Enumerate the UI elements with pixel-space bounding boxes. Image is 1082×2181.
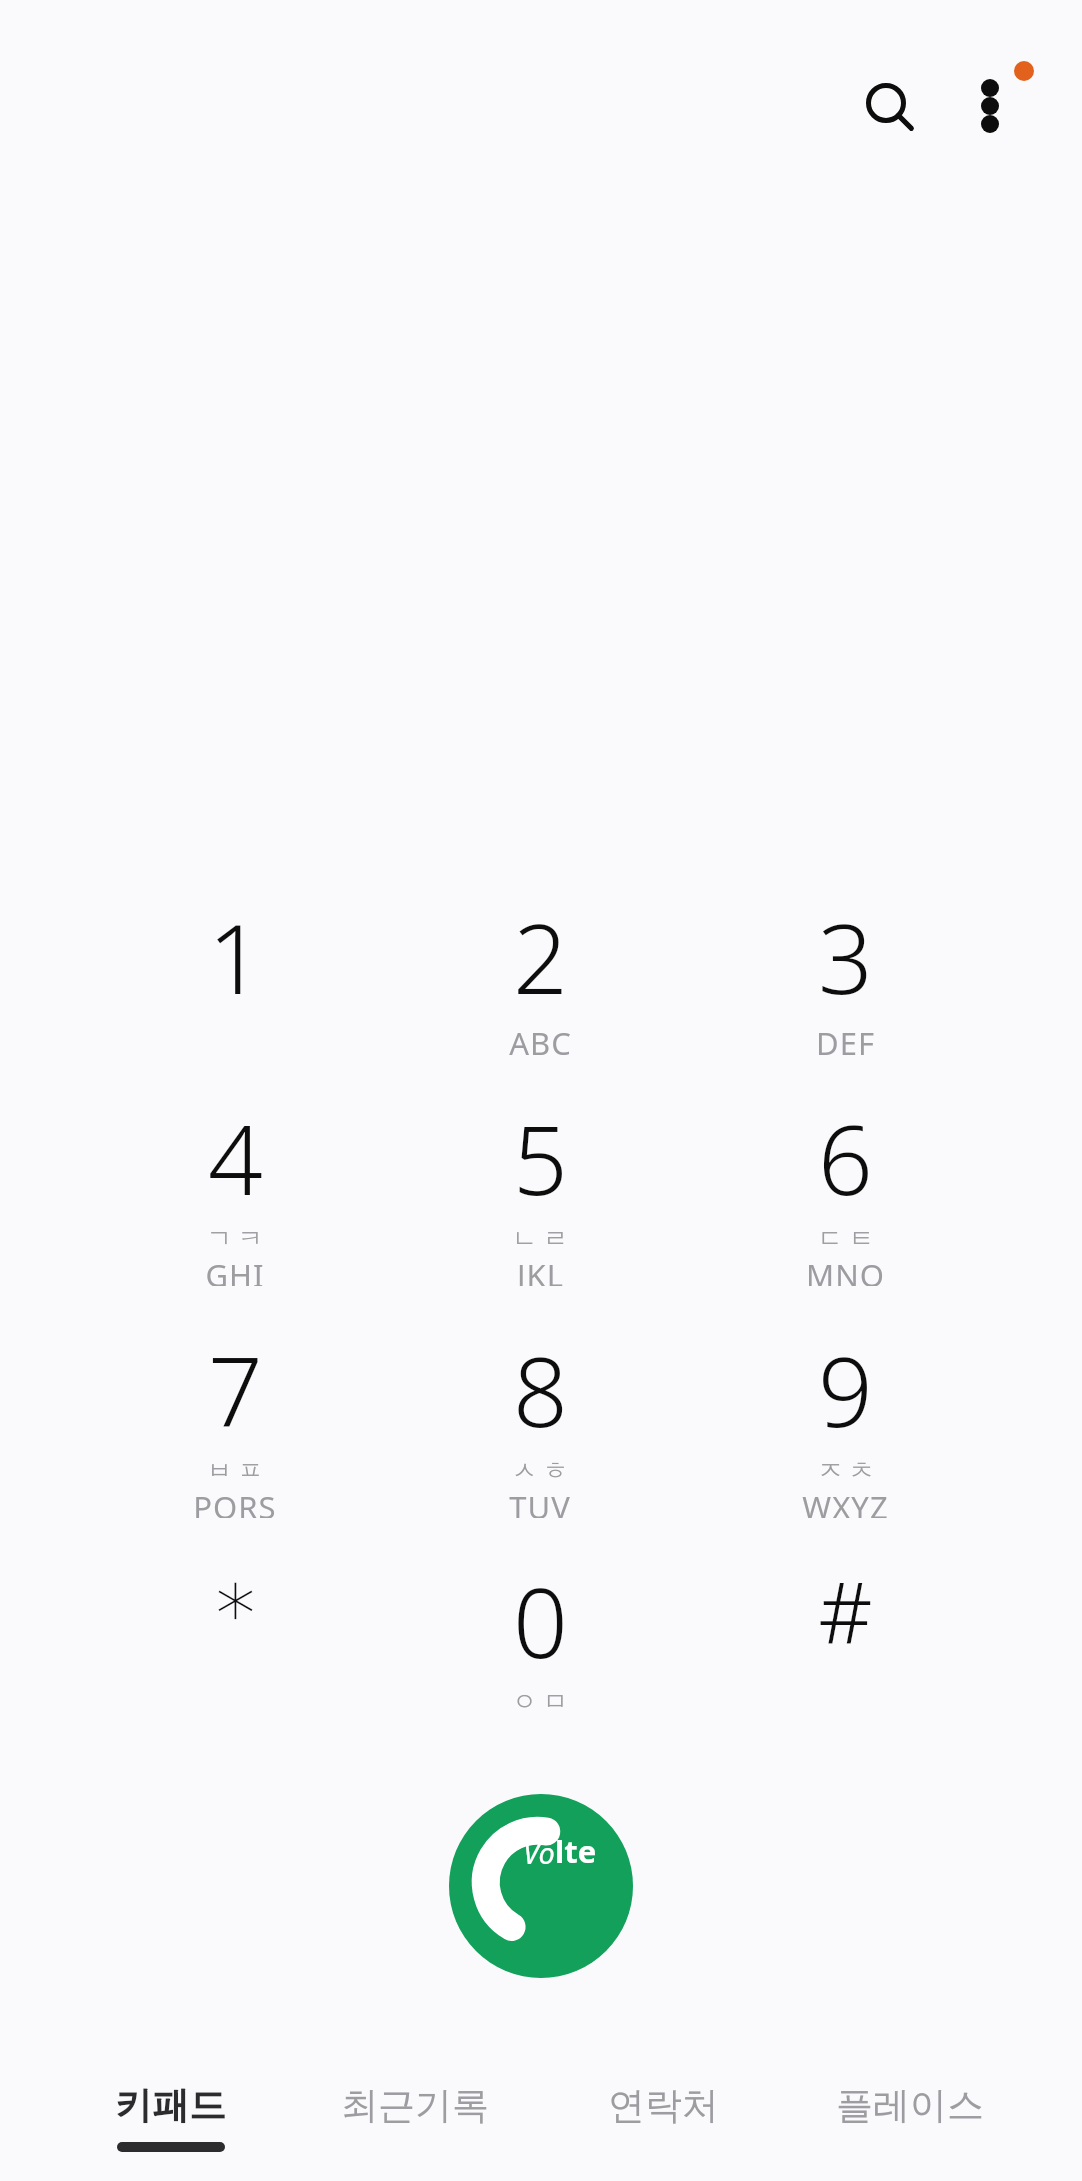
button[interactable]: 5 bbox=[390, 1090, 690, 1286]
button[interactable]: 키패드 bbox=[50, 2056, 290, 2181]
staticText: TUV bbox=[509, 1486, 571, 1518]
staticText: # bbox=[818, 1554, 873, 1668]
staticText: 2 bbox=[513, 891, 568, 1022]
staticText: ABC bbox=[509, 1022, 572, 1064]
button[interactable]: 0 bbox=[390, 1553, 690, 1749]
staticText: ∗ bbox=[210, 1552, 261, 1645]
staticText: ㅅㅎ bbox=[509, 1455, 571, 1486]
button[interactable]: Search bbox=[828, 45, 944, 161]
staticText: GHI bbox=[205, 1254, 265, 1286]
staticText: 9 bbox=[818, 1324, 873, 1455]
staticText: 키패드 bbox=[115, 2082, 226, 2129]
staticText: PQRS bbox=[193, 1486, 277, 1518]
button[interactable]: 7 bbox=[85, 1322, 385, 1518]
button[interactable]: 6 bbox=[695, 1090, 995, 1286]
staticText: JKL bbox=[517, 1254, 564, 1286]
button[interactable]: 플레이스 bbox=[790, 2056, 1030, 2181]
staticText: ㅈㅊ bbox=[815, 1455, 877, 1486]
staticText: 최근기록 bbox=[341, 2082, 489, 2129]
staticText: ㅇㅁ bbox=[509, 1686, 571, 1717]
button[interactable]: Call bbox=[449, 1794, 633, 1978]
staticText: MNO bbox=[806, 1254, 885, 1286]
staticText: 0 bbox=[513, 1555, 568, 1686]
staticText: 연락처 bbox=[608, 2082, 719, 2129]
button[interactable]: 최근기록 bbox=[295, 2056, 535, 2181]
staticText: ㄱㅋ bbox=[204, 1223, 266, 1254]
staticText: DEF bbox=[816, 1022, 875, 1064]
staticText: WXYZ bbox=[802, 1486, 889, 1518]
button[interactable]: 3 bbox=[695, 889, 995, 1085]
staticText: 4 bbox=[208, 1092, 263, 1223]
button[interactable]: 1 bbox=[85, 889, 385, 1085]
button[interactable]: 9 bbox=[695, 1322, 995, 1518]
staticText: ㄴㄹ bbox=[509, 1223, 571, 1254]
staticText: ㅂㅍ bbox=[204, 1455, 266, 1486]
button[interactable]: 8 bbox=[390, 1322, 690, 1518]
button[interactable]: 4 bbox=[85, 1090, 385, 1286]
staticText: 1 bbox=[208, 891, 263, 1022]
button[interactable]: # bbox=[695, 1552, 995, 1748]
staticText: 7 bbox=[208, 1324, 263, 1455]
staticText: lte bbox=[555, 1830, 597, 1872]
button[interactable]: 연락처 bbox=[543, 2056, 783, 2181]
staticText: 5 bbox=[513, 1092, 568, 1223]
button[interactable]: 2 bbox=[390, 889, 690, 1085]
staticText: ㄷㅌ bbox=[815, 1223, 877, 1254]
staticText: 6 bbox=[818, 1092, 873, 1223]
staticText: 8 bbox=[513, 1324, 568, 1455]
button[interactable]: More options bbox=[938, 40, 1062, 164]
staticText: Vo bbox=[523, 1833, 555, 1872]
button[interactable]: ∗ bbox=[85, 1550, 385, 1746]
staticText: 플레이스 bbox=[836, 2082, 984, 2129]
staticText: 3 bbox=[818, 891, 873, 1022]
